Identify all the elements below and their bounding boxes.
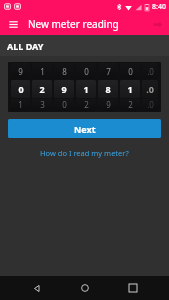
staticText: 1	[127, 83, 133, 95]
button[interactable]: 8	[54, 63, 74, 79]
button[interactable]: .0	[142, 80, 158, 98]
staticText: 0	[84, 66, 89, 77]
button[interactable]: 0	[54, 99, 74, 111]
staticText: 3	[40, 99, 45, 110]
button[interactable]: 1	[32, 63, 52, 79]
button[interactable]: Back	[24, 276, 48, 300]
staticText: ALL DAY	[7, 40, 44, 52]
button[interactable]: 2	[76, 99, 96, 111]
button[interactable]: 9	[98, 99, 118, 111]
staticText: .0	[147, 66, 154, 77]
button[interactable]: 2	[120, 99, 140, 111]
button[interactable]: 0	[76, 63, 96, 79]
staticText: 8	[105, 83, 111, 95]
button[interactable]: Next	[8, 119, 161, 138]
staticText: 9	[61, 83, 67, 95]
button[interactable]: 7	[98, 63, 118, 79]
button[interactable]: 1	[76, 80, 96, 98]
staticText: Next	[74, 123, 96, 135]
staticText: .0	[147, 99, 154, 110]
staticText: 8	[62, 66, 67, 77]
staticText: 2	[39, 83, 45, 95]
button[interactable]: 0	[11, 80, 30, 98]
button[interactable]: .0	[142, 99, 158, 111]
staticText: 2	[84, 99, 89, 110]
button[interactable]: 0	[120, 63, 140, 79]
staticText: 8:40	[152, 2, 166, 12]
button[interactable]: 8	[98, 80, 118, 98]
staticText: How do I read my meter?	[40, 148, 129, 158]
button[interactable]: 1	[120, 80, 140, 98]
staticText: 0	[18, 83, 24, 95]
button[interactable]: Recent apps	[121, 276, 145, 300]
staticText: 1	[40, 66, 45, 77]
button[interactable]: 2	[32, 80, 52, 98]
staticText: 2	[128, 99, 133, 110]
staticText: 7	[106, 66, 111, 77]
button[interactable]: .0	[142, 63, 158, 79]
staticText: 1	[18, 99, 23, 110]
staticText: 1	[83, 83, 89, 95]
button[interactable]: Open navigation drawer	[5, 16, 21, 32]
staticText: 0	[128, 66, 133, 77]
button[interactable]: 3	[32, 99, 52, 111]
staticText: 9	[106, 99, 111, 110]
button[interactable]: Home	[73, 276, 97, 300]
button[interactable]: How do I read my meter?	[34, 146, 135, 160]
button[interactable]: 9	[11, 63, 30, 79]
button[interactable]: More options	[149, 16, 165, 32]
staticText: 9	[18, 66, 23, 77]
button[interactable]: 9	[54, 80, 74, 98]
staticText: New meter reading	[28, 17, 119, 31]
button[interactable]: 1	[11, 99, 30, 111]
staticText: .0	[146, 83, 154, 95]
staticText: 0	[62, 99, 67, 110]
